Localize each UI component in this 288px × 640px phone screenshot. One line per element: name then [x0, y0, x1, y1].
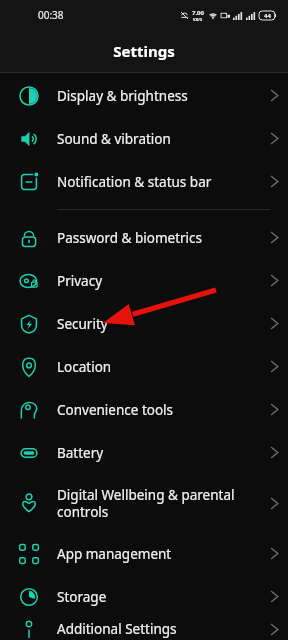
staticText: Settings [113, 41, 175, 61]
button[interactable]: Battery [0, 431, 288, 474]
staticText: Sound & vibration [57, 130, 243, 148]
staticText: Display & brightness [57, 87, 243, 105]
button[interactable]: Password & biometrics [0, 216, 288, 259]
staticText: 7.00 [192, 9, 204, 17]
button[interactable]: Additional Settings [0, 618, 288, 640]
staticText: Battery [57, 444, 243, 462]
staticText: App management [57, 545, 243, 563]
button[interactable]: Display & brightness [0, 74, 288, 117]
button[interactable]: Security [0, 302, 288, 345]
staticText: Additional Settings [57, 620, 243, 638]
staticText: Location [57, 358, 243, 376]
button[interactable]: Digital Wellbeing & parental controls [0, 474, 288, 532]
staticText: 00:38 [38, 8, 64, 22]
staticText: Privacy [57, 272, 243, 290]
button[interactable]: Notification & status bar [0, 160, 288, 203]
staticText: Password & biometrics [57, 229, 243, 247]
staticText: Storage [57, 588, 243, 606]
button[interactable]: Convenience tools [0, 388, 288, 431]
staticText: Notification & status bar [57, 173, 243, 191]
staticText: Convenience tools [57, 401, 243, 419]
button[interactable]: Privacy [0, 259, 288, 302]
staticText: Digital Wellbeing & parental controls [57, 486, 243, 521]
button[interactable]: Sound & vibration [0, 117, 288, 160]
staticText: KB/S [193, 17, 203, 22]
button[interactable]: Storage [0, 575, 288, 618]
button[interactable]: App management [0, 532, 288, 575]
button[interactable]: Location [0, 345, 288, 388]
staticText: 44 [264, 12, 271, 20]
staticText: Security [57, 315, 243, 333]
